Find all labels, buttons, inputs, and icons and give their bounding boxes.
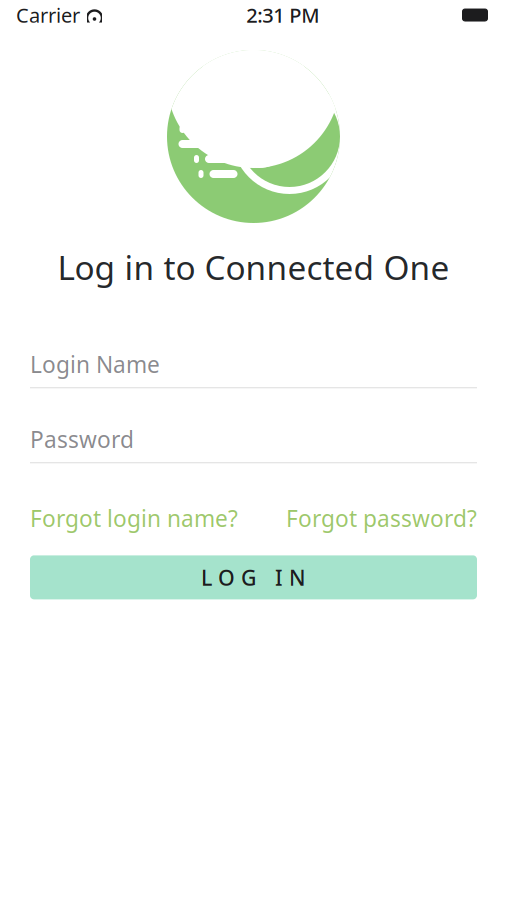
staticText: Carrier [16, 2, 80, 28]
staticText: L O G I N [201, 563, 306, 591]
staticText: Password [30, 424, 134, 454]
button[interactable]: Forgot password? [286, 503, 477, 533]
button[interactable]: L O G I N [30, 555, 477, 599]
staticText: 2:31 PM [246, 2, 319, 28]
staticText: Forgot password? [286, 503, 477, 533]
staticText: Log in to Connected One [57, 245, 449, 289]
button[interactable]: Forgot login name? [30, 503, 238, 533]
staticText: Forgot login name? [30, 503, 238, 533]
staticText: Login Name [30, 349, 160, 379]
